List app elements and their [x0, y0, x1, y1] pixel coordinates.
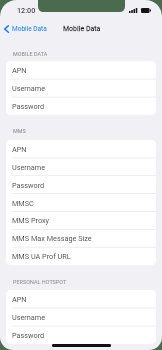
staticText: Mobile Data: [63, 25, 101, 33]
button[interactable]: Username: [6, 79, 156, 97]
button[interactable]: MMS Proxy: [6, 211, 156, 229]
button[interactable]: APN: [6, 290, 156, 308]
button[interactable]: Password: [6, 326, 156, 344]
staticText: MMS UA Prof URL: [12, 252, 71, 261]
staticText: Username: [12, 84, 46, 93]
staticText: MMSC: [12, 199, 34, 208]
staticText: Username: [12, 163, 46, 172]
other: Home indicator: [52, 344, 111, 347]
staticText: Password: [12, 331, 45, 340]
button[interactable]: Password: [6, 176, 156, 194]
staticText: Username: [12, 313, 46, 322]
button[interactable]: MMS Max Message Size: [6, 229, 156, 247]
button[interactable]: Username: [6, 308, 156, 326]
button[interactable]: Password: [6, 97, 156, 115]
staticText: MOBILE DATA: [13, 51, 48, 57]
other: Cellular signal: [129, 8, 138, 13]
staticText: 12:00: [17, 6, 36, 14]
staticText: Password: [12, 102, 45, 111]
button[interactable]: MMSC: [6, 194, 156, 212]
staticText: Password: [12, 181, 45, 190]
staticText: APN: [12, 66, 27, 75]
staticText: PERSONAL HOTSPOT: [13, 279, 67, 285]
button[interactable]: Username: [6, 158, 156, 176]
staticText: MMS: [13, 128, 26, 134]
button[interactable]: APN: [6, 140, 156, 158]
staticText: MMS Proxy: [12, 216, 50, 225]
other: Battery: [141, 8, 151, 13]
staticText: APN: [12, 295, 27, 304]
button[interactable]: Mobile Data: [0, 21, 51, 37]
staticText: APN: [12, 145, 27, 154]
staticText: Mobile Data: [12, 25, 47, 33]
staticText: MMS Max Message Size: [12, 234, 92, 243]
button[interactable]: MMS UA Prof URL: [6, 247, 156, 265]
button[interactable]: APN: [6, 61, 156, 79]
